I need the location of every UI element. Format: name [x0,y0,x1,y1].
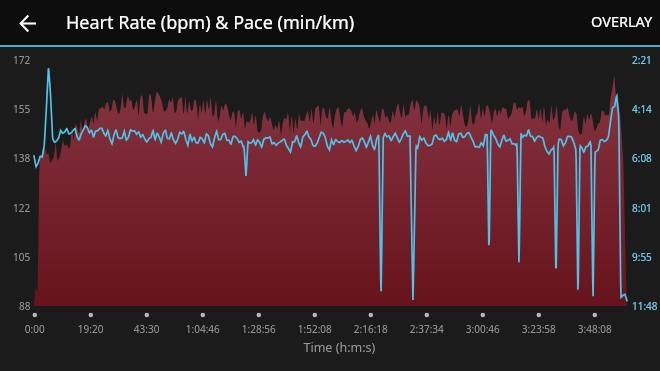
staticText: Heart Rate (bpm) & Pace (min/km) [66,10,355,35]
button[interactable]: OVERLAY [583,1,660,45]
staticText: OVERLAY [591,11,653,31]
button[interactable]: Back [0,0,55,45]
